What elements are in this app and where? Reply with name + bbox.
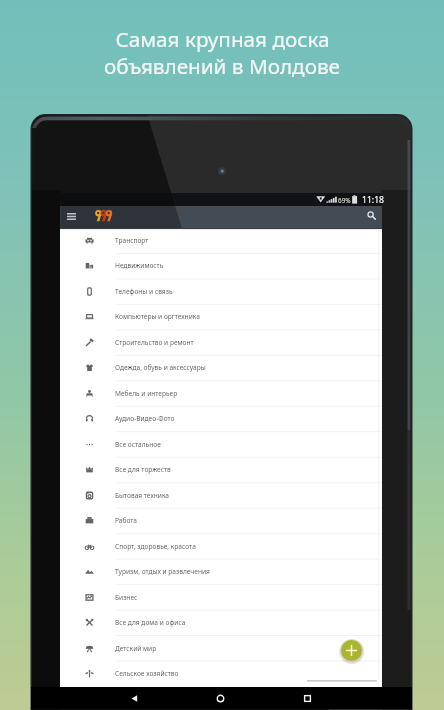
staticText: Строительство и ремонт xyxy=(115,338,194,347)
staticText: Телефоны и связь xyxy=(115,287,173,296)
staticText: Одежда, обувь и аксессуары xyxy=(115,363,206,372)
button[interactable]: Спорт, здоровье, красота xyxy=(60,534,382,559)
button[interactable]: Все для торжеств xyxy=(60,457,382,482)
button[interactable]: Add advert xyxy=(341,640,362,661)
staticText: Спорт, здоровье, красота xyxy=(115,542,196,551)
button[interactable]: Search xyxy=(363,207,380,224)
button[interactable]: Recent apps xyxy=(297,688,317,708)
button[interactable]: Бизнес xyxy=(60,585,382,610)
staticText: Компьютеры и оргтехника xyxy=(115,312,200,321)
staticText: Недвижимость xyxy=(115,261,164,270)
staticText: Все остальное xyxy=(115,440,161,449)
button[interactable]: Строительство и ремонт xyxy=(60,330,382,355)
button[interactable]: Все для дома и офиса xyxy=(60,610,382,635)
button[interactable]: Туризм, отдых и развлечения xyxy=(60,559,382,584)
staticText: Работа xyxy=(115,516,138,525)
button[interactable]: Все остальное xyxy=(60,432,382,457)
staticText: Транспорт xyxy=(115,236,149,245)
button[interactable]: Транспорт xyxy=(60,228,382,253)
staticText: Сельское хозяйство xyxy=(115,669,179,678)
button[interactable]: Детский мир xyxy=(60,636,382,661)
button[interactable]: Open navigation menu xyxy=(63,208,80,225)
staticText: Все для торжеств xyxy=(115,465,171,474)
button[interactable]: Одежда, обувь и аксессуары xyxy=(60,355,382,380)
button[interactable]: Home xyxy=(210,688,230,708)
staticText: 11:18 xyxy=(362,194,384,206)
staticText: Бизнес xyxy=(115,593,138,602)
staticText: Мебель и интерьер xyxy=(115,389,178,398)
button[interactable]: Недвижимость xyxy=(60,253,382,278)
staticText: Бытовая техника xyxy=(115,491,169,500)
button[interactable]: Сельское хозяйство xyxy=(60,661,382,686)
staticText: объявлений в Молдове xyxy=(104,52,340,80)
button[interactable]: Компьютеры и оргтехника xyxy=(60,304,382,329)
staticText: Все для дома и офиса xyxy=(115,618,186,627)
button[interactable]: Аудио-Видео-Фото xyxy=(60,406,382,431)
staticText: 69% xyxy=(338,196,351,205)
staticText: Самая крупная доска xyxy=(115,25,330,53)
button[interactable]: Мебель и интерьер xyxy=(60,381,382,406)
button[interactable]: Бытовая техника xyxy=(60,483,382,508)
button[interactable]: Телефоны и связь xyxy=(60,279,382,304)
staticText: Детский мир xyxy=(115,644,157,653)
button[interactable]: Back xyxy=(124,688,144,708)
button[interactable]: Работа xyxy=(60,508,382,533)
staticText: Туризм, отдых и развлечения xyxy=(115,567,210,576)
staticText: Аудио-Видео-Фото xyxy=(115,414,175,423)
